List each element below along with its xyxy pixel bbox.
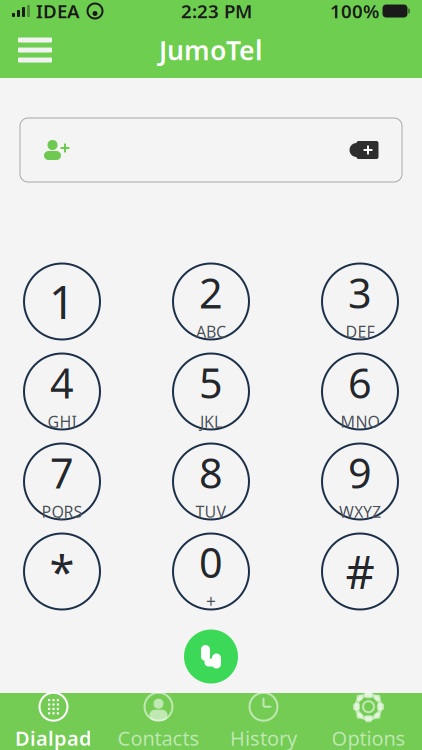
button[interactable]: Menu bbox=[12, 30, 58, 70]
staticText: JumoTel bbox=[159, 32, 263, 68]
button[interactable]: 3 bbox=[316, 257, 404, 345]
staticText: MNO bbox=[340, 411, 379, 432]
staticText: WXYZ bbox=[339, 501, 381, 522]
button[interactable]: History bbox=[211, 693, 316, 750]
staticText: 100% bbox=[330, 0, 379, 23]
button[interactable]: 9 bbox=[316, 437, 404, 525]
button[interactable]: Call bbox=[178, 623, 244, 689]
button[interactable]: 5 bbox=[167, 347, 255, 435]
staticText: 3 bbox=[348, 265, 372, 320]
button[interactable]: Options bbox=[316, 693, 421, 750]
staticText: 1 bbox=[49, 271, 75, 332]
button[interactable]: # bbox=[316, 527, 404, 615]
staticText: IDEA bbox=[36, 0, 80, 23]
staticText: # bbox=[345, 541, 374, 602]
button[interactable]: Contacts bbox=[106, 693, 211, 750]
staticText: Dialpad bbox=[15, 725, 92, 750]
button[interactable]: 6 bbox=[316, 347, 404, 435]
staticText: + bbox=[206, 589, 216, 612]
staticText: * bbox=[49, 541, 74, 602]
button[interactable]: 7 bbox=[18, 437, 106, 525]
staticText: Options bbox=[331, 725, 405, 750]
button[interactable]: Dialpad bbox=[1, 693, 106, 750]
staticText: TUV bbox=[195, 501, 226, 522]
staticText: 2:23 PM bbox=[181, 0, 252, 23]
staticText: 5 bbox=[199, 355, 223, 410]
staticText: ABC bbox=[196, 321, 226, 342]
button[interactable]: Delete bbox=[340, 130, 388, 170]
staticText: History bbox=[230, 725, 297, 750]
staticText: 8 bbox=[199, 445, 223, 500]
button[interactable]: 8 bbox=[167, 437, 255, 525]
staticText: 0 bbox=[199, 534, 223, 589]
staticText: PQRS bbox=[41, 501, 82, 522]
staticText: 7 bbox=[50, 445, 74, 500]
staticText: 2 bbox=[199, 265, 223, 320]
staticText: DEF bbox=[345, 321, 374, 342]
staticText: Contacts bbox=[117, 725, 199, 750]
button[interactable]: 0 bbox=[167, 527, 255, 615]
button[interactable]: 4 bbox=[18, 347, 106, 435]
staticText: JKL bbox=[200, 411, 222, 432]
staticText: 6 bbox=[348, 355, 372, 410]
button[interactable]: Add contact bbox=[34, 130, 80, 170]
staticText: 9 bbox=[348, 445, 372, 500]
button[interactable]: 2 bbox=[167, 257, 255, 345]
staticText: GHI bbox=[47, 411, 76, 432]
button[interactable]: 1 bbox=[18, 257, 106, 345]
button[interactable]: * bbox=[18, 527, 106, 615]
staticText: 4 bbox=[50, 355, 74, 410]
